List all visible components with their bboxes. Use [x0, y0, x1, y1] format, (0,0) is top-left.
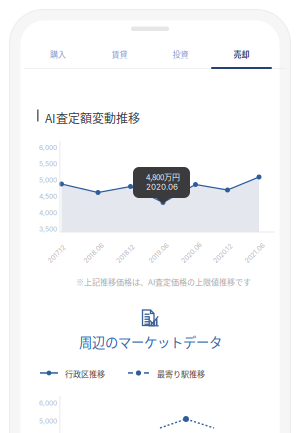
staticText: 周辺のマーケットデータ: [79, 332, 222, 351]
staticText: 2020.06: [179, 259, 205, 267]
staticText: 売却: [233, 48, 249, 60]
button[interactable]: 購入: [0, 0, 304, 433]
staticText: 2020.12: [211, 259, 235, 267]
staticText: ※上記推移価格は、AI査定価格の上限値推移です: [76, 276, 251, 288]
staticText: 2020.06: [146, 182, 178, 192]
staticText: 2019.06: [147, 259, 172, 267]
staticText: 2017.12: [46, 259, 68, 267]
staticText: 5,000: [39, 417, 57, 425]
button[interactable]: 賃貸: [0, 0, 304, 433]
button[interactable]: 投資: [0, 0, 304, 433]
staticText: 賃貸: [111, 48, 127, 60]
staticText: 投資: [172, 48, 188, 60]
staticText: 4,500: [39, 192, 57, 200]
staticText: 最寄り駅推移: [157, 368, 205, 380]
staticText: 4,800万円: [146, 171, 180, 183]
staticText: 5,500: [39, 160, 57, 168]
staticText: 5,000: [39, 176, 57, 184]
staticText: 6,000: [39, 399, 57, 407]
staticText: 行政区推移: [65, 368, 105, 380]
staticText: 2021.06: [243, 259, 268, 267]
staticText: 6,000: [39, 143, 57, 152]
button[interactable]: 売却: [0, 0, 304, 433]
staticText: 2018.06: [82, 259, 107, 267]
staticText: 購入: [50, 48, 66, 60]
staticText: 4,000: [39, 209, 57, 217]
staticText: AI査定額変動推移: [45, 109, 140, 126]
staticText: 2018.12: [114, 259, 137, 267]
staticText: 3,500: [39, 225, 57, 233]
